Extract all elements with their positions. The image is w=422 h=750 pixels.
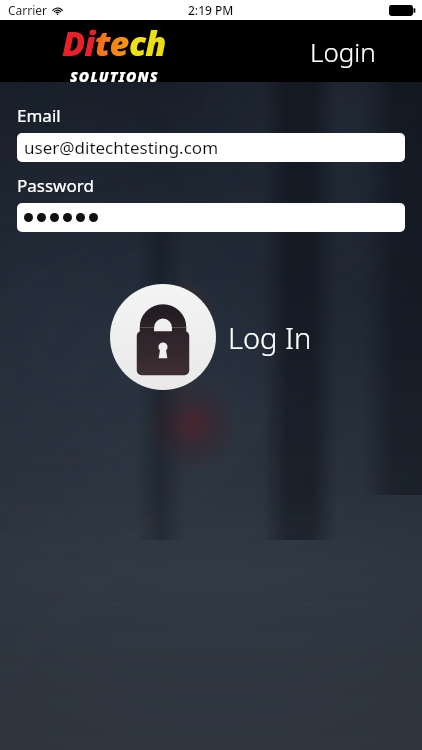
button[interactable] — [17, 203, 405, 232]
button[interactable]: user@ditechtesting.com — [17, 133, 405, 162]
staticText: Di — [62, 20, 95, 66]
staticText: SOLUTIONS — [70, 67, 159, 82]
staticText: Carrier — [8, 2, 48, 18]
staticText: te — [95, 20, 129, 66]
staticText: Log In — [228, 318, 312, 357]
button[interactable]: Login — [310, 34, 376, 69]
staticText: Email — [17, 104, 61, 127]
staticText: Password — [17, 174, 94, 197]
staticText: user@ditechtesting.com — [24, 136, 219, 159]
button[interactable]: Log In — [106, 284, 316, 390]
staticText: 2:19 PM — [188, 2, 234, 18]
staticText: ch — [129, 20, 166, 66]
